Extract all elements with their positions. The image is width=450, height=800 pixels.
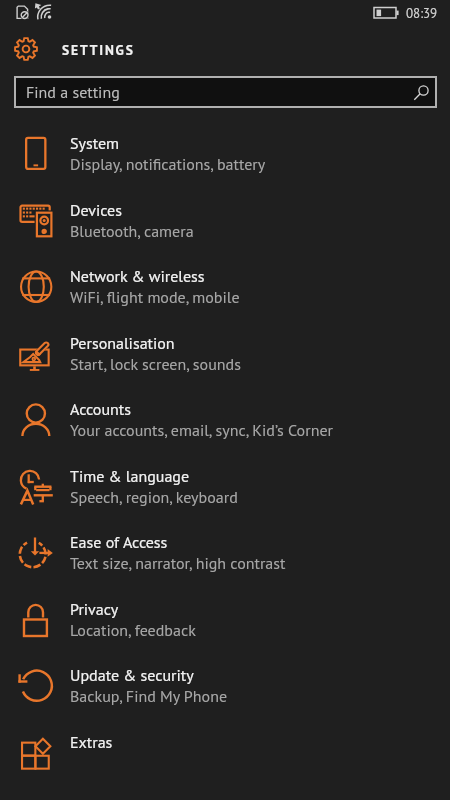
staticText: Personalisation — [70, 333, 175, 354]
staticText: Display, notifications, battery — [70, 154, 266, 175]
button[interactable]: Network & wireless — [0, 252, 450, 318]
staticText: Time & language — [70, 466, 190, 487]
staticText: Find a setting — [26, 82, 120, 103]
staticText: Network & wireless — [70, 266, 205, 287]
button[interactable]: Time & language — [0, 452, 450, 518]
staticText: Update & security — [70, 665, 194, 686]
button[interactable]: SETTINGS — [0, 33, 450, 65]
button[interactable]: Privacy — [0, 585, 450, 651]
button[interactable]: Personalisation — [0, 319, 450, 385]
staticText: WiFi, flight mode, mobile — [70, 287, 240, 308]
staticText: Extras — [70, 732, 113, 753]
button[interactable]: System — [0, 119, 450, 185]
button[interactable]: Accounts — [0, 385, 450, 451]
staticText: Start, lock screen, sounds — [70, 354, 241, 375]
staticText: Ease of Access — [70, 532, 168, 553]
staticText: SETTINGS — [62, 41, 135, 58]
button[interactable]: Ease of Access — [0, 518, 450, 584]
staticText: Location, feedback — [70, 620, 196, 641]
staticText: System — [70, 133, 120, 154]
staticText: Accounts — [70, 399, 131, 420]
button[interactable]: Find a setting — [14, 76, 437, 108]
staticText: Devices — [70, 200, 122, 221]
staticText: Backup, Find My Phone — [70, 686, 228, 707]
staticText: 08:39 — [406, 5, 438, 22]
button[interactable]: Extras — [0, 718, 450, 784]
button[interactable]: Devices — [0, 186, 450, 252]
staticText: Text size, narrator, high contrast — [70, 553, 286, 574]
staticText: Privacy — [70, 599, 119, 620]
staticText: Your accounts, email, sync, Kid’s Corner — [70, 420, 333, 441]
button[interactable]: Update & security — [0, 651, 450, 717]
staticText: Speech, region, keyboard — [70, 487, 238, 508]
staticText: Bluetooth, camera — [70, 221, 194, 242]
